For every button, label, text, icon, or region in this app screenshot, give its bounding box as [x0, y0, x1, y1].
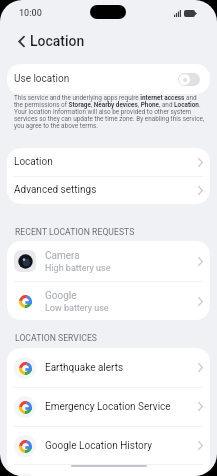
staticText: This service and the underlying apps req…	[14, 94, 214, 129]
staticText: Use location	[14, 73, 70, 85]
staticText: High battery use	[45, 263, 111, 274]
staticText: Location	[30, 33, 85, 49]
staticText: RECENT LOCATION REQUESTS	[15, 227, 135, 237]
button[interactable]: Google	[7, 281, 210, 320]
button[interactable]: Google Location History	[7, 426, 210, 465]
button[interactable]: Back	[8, 28, 34, 54]
button[interactable]: Advanced settings	[7, 176, 210, 204]
staticText: Earthquake alerts	[45, 362, 124, 374]
staticText: LOCATION SERVICES	[15, 333, 98, 343]
button[interactable]: Earthquake alerts	[7, 348, 210, 387]
staticText: Low battery use	[45, 303, 109, 314]
button[interactable]: Location	[7, 148, 210, 176]
button[interactable]: Emergency Location Service	[7, 387, 210, 426]
staticText: 10:00	[19, 8, 42, 19]
staticText: Advanced settings	[14, 184, 97, 196]
staticText: Emergency Location Service	[45, 401, 171, 413]
staticText: Location	[14, 156, 53, 168]
staticText: Google Location History	[45, 440, 153, 452]
button[interactable]: Use location	[7, 64, 210, 94]
button[interactable]: Google Location Sharing	[7, 464, 210, 476]
staticText: Google	[45, 290, 77, 302]
button[interactable]: Camera	[7, 241, 210, 281]
staticText: Camera	[45, 250, 80, 262]
